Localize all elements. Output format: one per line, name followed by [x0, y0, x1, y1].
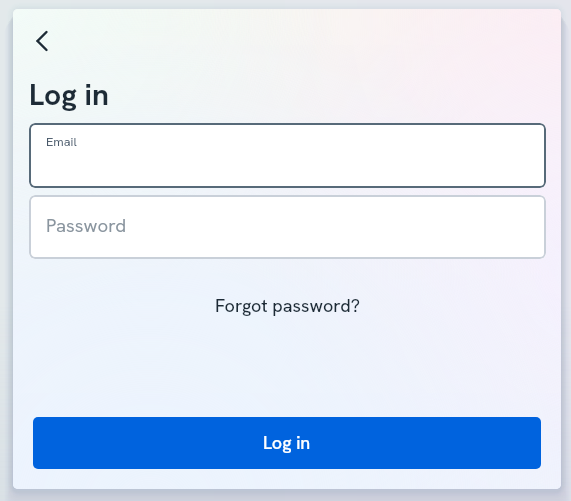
- staticText: Log in: [29, 78, 109, 113]
- button[interactable]: Back: [14, 18, 58, 62]
- staticText: Password: [46, 215, 127, 237]
- staticText: Email: [46, 134, 77, 149]
- button[interactable]: Email: [29, 123, 546, 188]
- button[interactable]: Log in: [33, 417, 541, 469]
- staticText: Log in: [263, 432, 311, 454]
- button[interactable]: Password: [29, 195, 546, 259]
- button[interactable]: Forgot password?: [207, 290, 369, 322]
